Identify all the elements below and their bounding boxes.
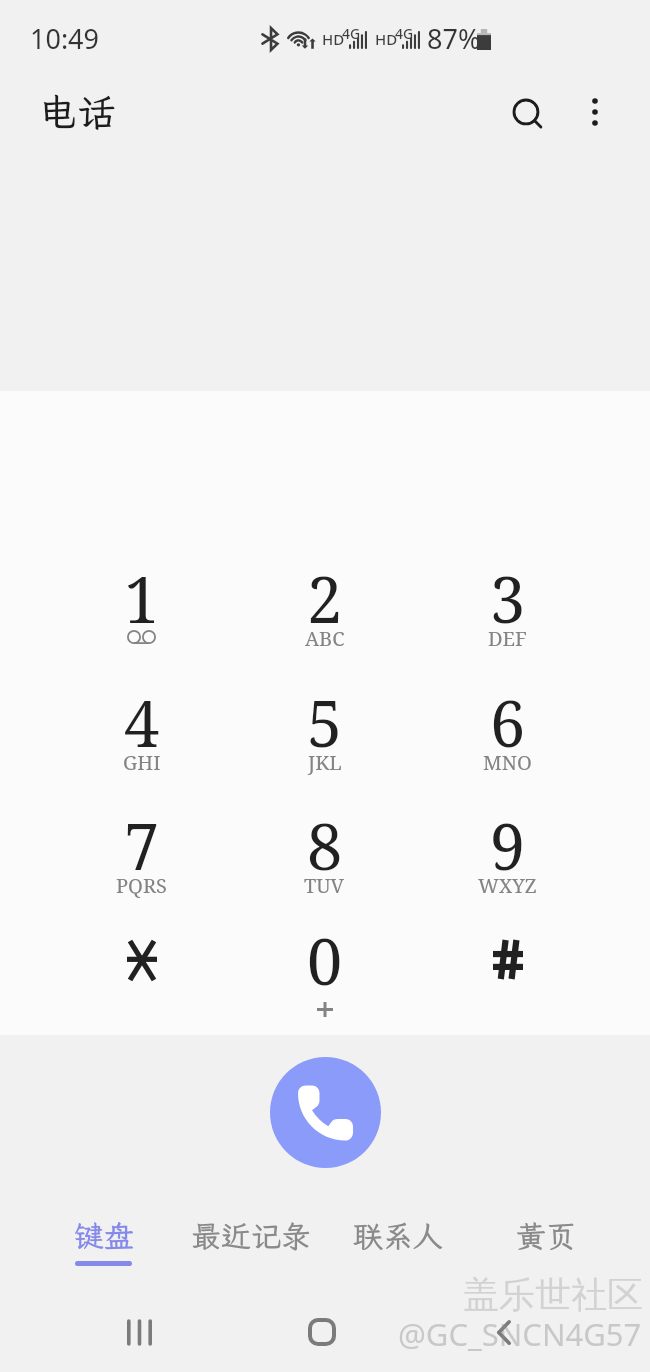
- staticText: 8: [307, 803, 343, 889]
- staticText: GHI: [123, 749, 161, 776]
- staticText: 2: [307, 556, 343, 642]
- staticText: 5: [307, 680, 343, 766]
- button[interactable]: Call: [270, 1057, 381, 1168]
- button[interactable]: 联系人: [324, 1196, 472, 1276]
- button[interactable]: [50, 898, 233, 1022]
- button[interactable]: 0: [233, 898, 416, 1022]
- staticText: MNO: [483, 749, 532, 776]
- staticText: @GC_SNCN4G57: [398, 1313, 642, 1355]
- staticText: 0: [307, 918, 343, 1004]
- staticText: 4G: [342, 24, 361, 43]
- button[interactable]: Home: [262, 1292, 382, 1372]
- staticText: 6: [490, 680, 526, 766]
- staticText: 87%: [427, 20, 481, 57]
- button[interactable]: Recents: [79, 1292, 199, 1372]
- button[interactable]: 最近记录: [177, 1196, 324, 1276]
- button[interactable]: 黄页: [472, 1196, 620, 1276]
- button[interactable]: 5: [233, 660, 416, 784]
- staticText: 4: [124, 680, 160, 766]
- staticText: 盖乐世社区: [463, 1272, 643, 1317]
- staticText: JKL: [308, 749, 342, 776]
- staticText: 4G: [395, 24, 414, 43]
- staticText: 黄页: [516, 1216, 576, 1256]
- button[interactable]: 3: [416, 536, 599, 660]
- button[interactable]: More options: [565, 82, 625, 142]
- button[interactable]: 8: [233, 783, 416, 907]
- staticText: 9: [490, 803, 526, 889]
- staticText: TUV: [304, 872, 345, 899]
- button[interactable]: Search: [498, 84, 560, 146]
- staticText: 键盘: [74, 1216, 134, 1256]
- button[interactable]: 键盘: [30, 1196, 177, 1276]
- staticText: 3: [490, 556, 526, 642]
- button[interactable]: 7: [50, 783, 233, 907]
- button[interactable]: 9: [416, 783, 599, 907]
- staticText: 10:49: [30, 20, 100, 57]
- staticText: HD: [322, 29, 345, 49]
- button[interactable]: 4: [50, 660, 233, 784]
- button[interactable]: [416, 898, 599, 1022]
- staticText: 联系人: [353, 1216, 443, 1256]
- button[interactable]: Back: [444, 1292, 564, 1372]
- button[interactable]: 6: [416, 660, 599, 784]
- staticText: 1: [124, 556, 160, 642]
- staticText: 电话: [39, 87, 116, 137]
- staticText: 7: [124, 803, 160, 889]
- staticText: PQRS: [116, 872, 167, 899]
- staticText: WXYZ: [478, 872, 537, 899]
- staticText: HD: [375, 29, 398, 49]
- staticText: 最近记录: [191, 1216, 311, 1256]
- button[interactable]: 1: [50, 536, 233, 660]
- staticText: ABC: [305, 625, 345, 652]
- button[interactable]: 2: [233, 536, 416, 660]
- staticText: DEF: [488, 625, 527, 652]
